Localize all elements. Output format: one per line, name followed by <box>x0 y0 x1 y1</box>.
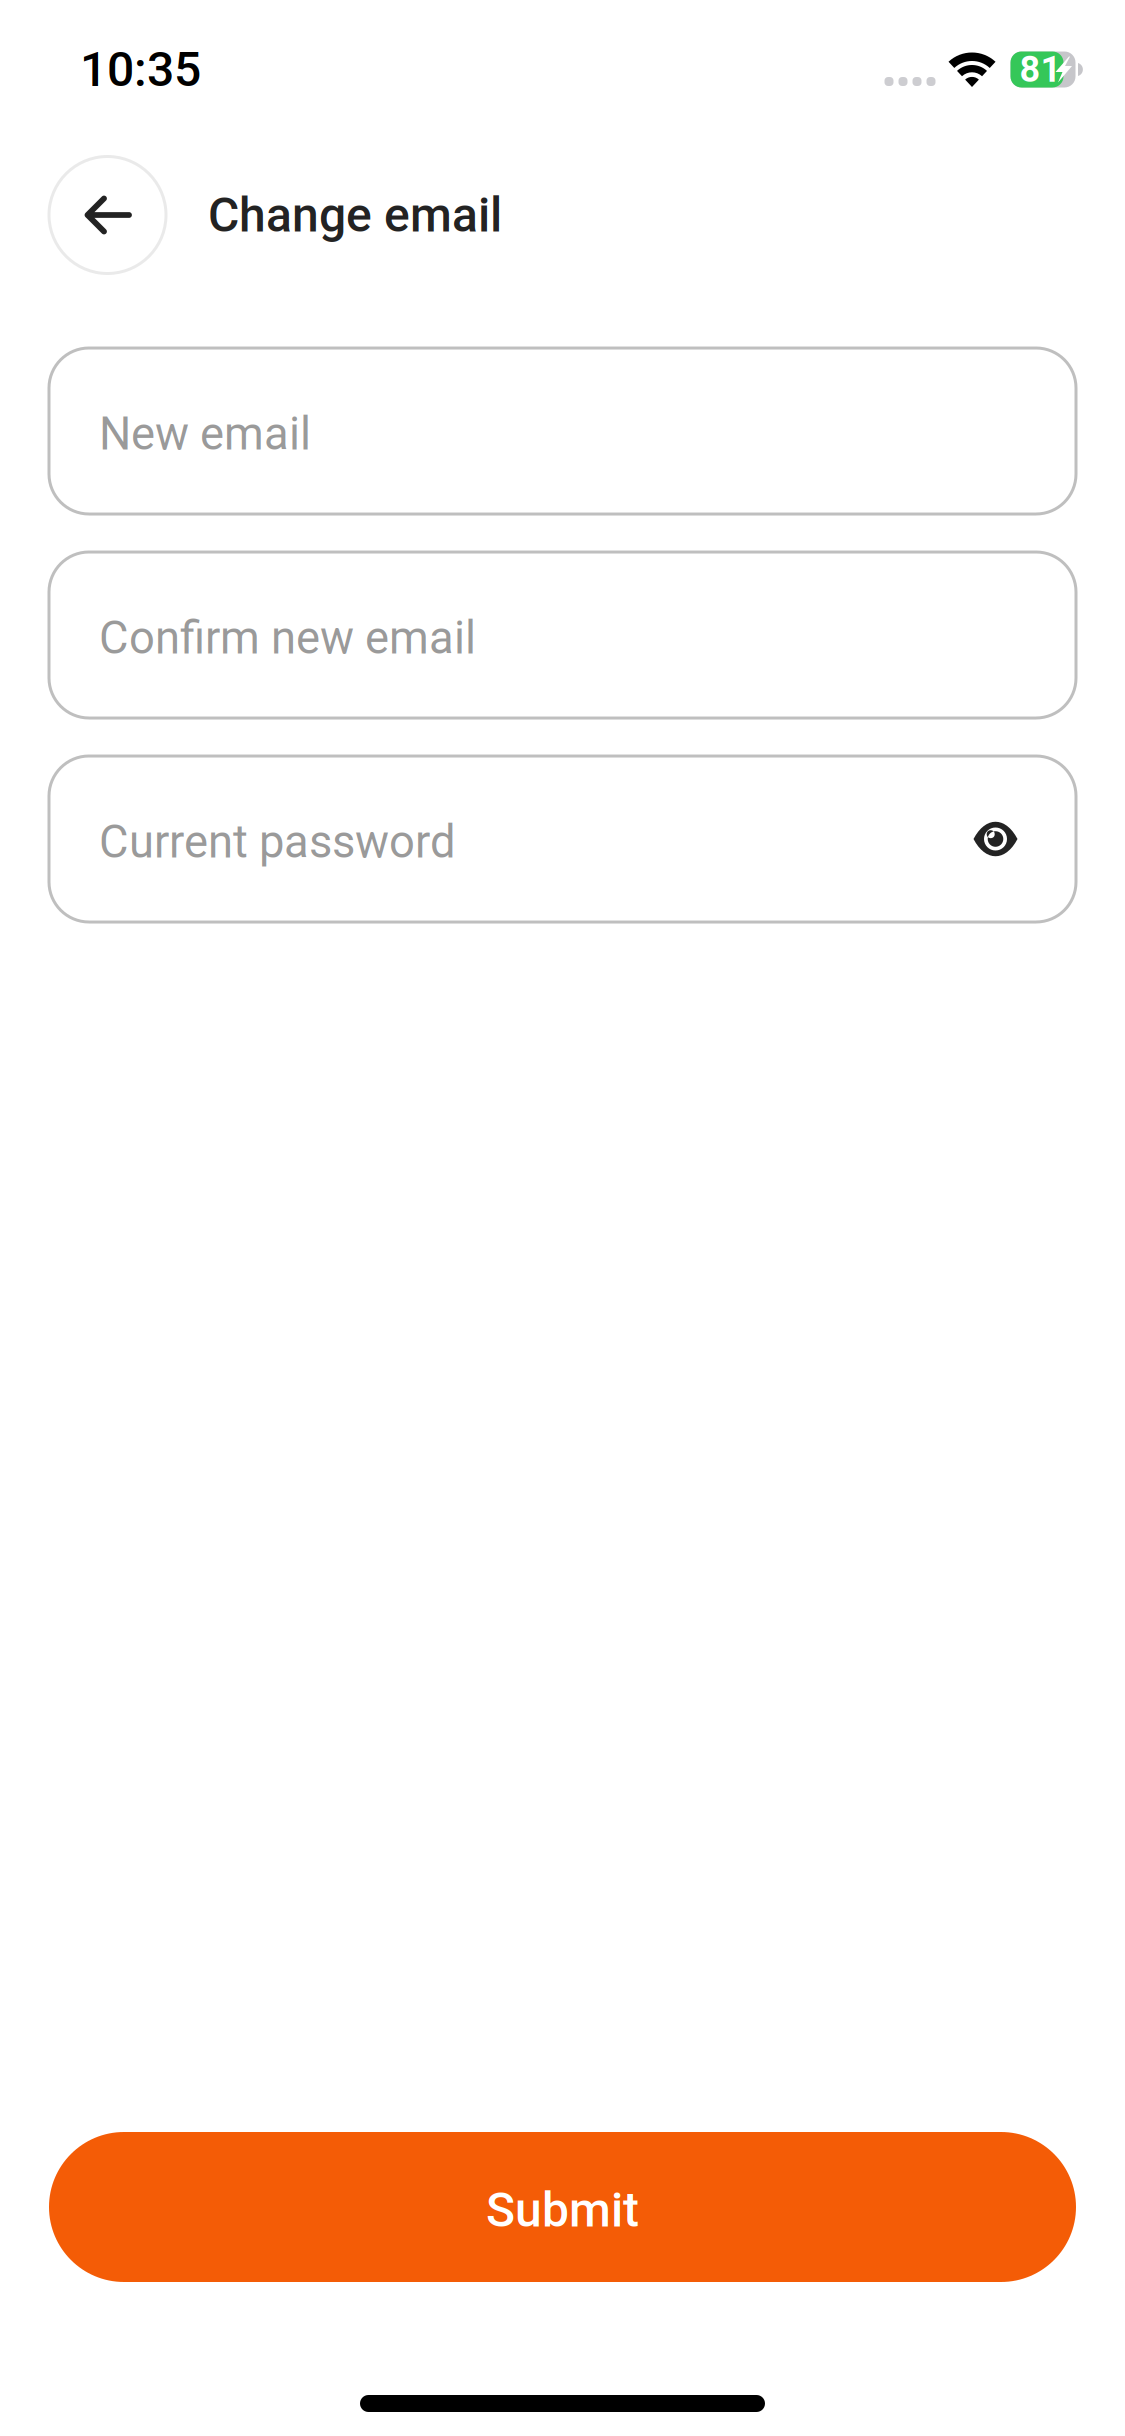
staticText: Confirm new email <box>99 611 476 664</box>
staticText: 10:35 <box>80 41 201 98</box>
button[interactable]: Back <box>49 156 166 273</box>
staticText: Submit <box>486 2182 639 2238</box>
staticText: Change email <box>208 187 502 243</box>
staticText: Current password <box>99 815 456 868</box>
button[interactable]: Show password <box>973 821 1018 857</box>
button[interactable]: Submit <box>49 2132 1076 2282</box>
staticText: 81 <box>1019 48 1061 91</box>
staticText: New email <box>99 407 311 460</box>
